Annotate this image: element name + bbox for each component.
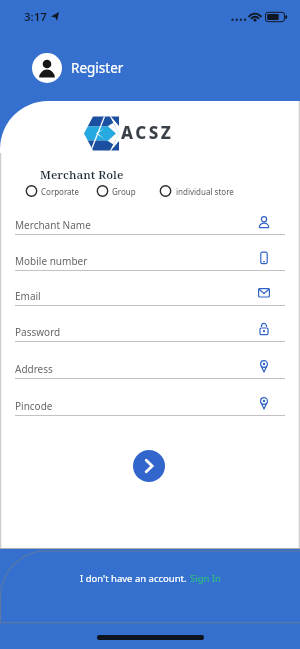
- staticText: Mobile number: [15, 254, 88, 268]
- button[interactable]: Mobile number: [15, 253, 285, 271]
- button[interactable]: Corporate: [26, 185, 96, 198]
- button[interactable]: Address: [15, 361, 285, 379]
- button[interactable]: Password: [15, 324, 285, 342]
- staticText: Merchant Role: [40, 167, 124, 183]
- staticText: 3:17: [24, 9, 47, 25]
- button[interactable]: Register: [32, 53, 124, 83]
- staticText: Sign In: [190, 572, 221, 585]
- staticText: Group: [112, 186, 136, 197]
- button[interactable]: Email: [15, 288, 285, 306]
- staticText: ACSZ: [121, 121, 174, 144]
- button[interactable]: I don't have an account.: [0, 570, 300, 586]
- staticText: I don't have an account.: [80, 572, 190, 585]
- button[interactable]: [133, 450, 165, 482]
- staticText: Corporate: [41, 186, 79, 197]
- button[interactable]: Merchant Name: [15, 217, 285, 235]
- staticText: Merchant Name: [15, 218, 91, 232]
- staticText: Email: [15, 289, 41, 303]
- staticText: Register: [71, 59, 124, 77]
- button[interactable]: Group: [97, 185, 167, 198]
- staticText: Pincode: [15, 399, 53, 413]
- staticText: Password: [15, 325, 61, 339]
- staticText: Address: [15, 362, 53, 376]
- staticText: individual store: [176, 186, 234, 197]
- button[interactable]: individual store: [160, 185, 230, 198]
- button[interactable]: Pincode: [15, 398, 285, 416]
